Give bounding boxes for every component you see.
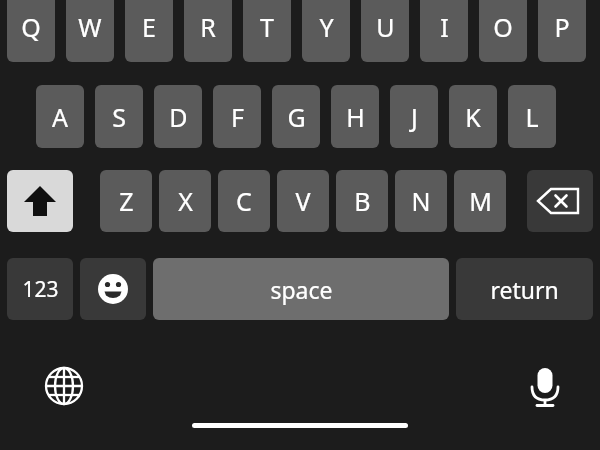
staticText: return: [490, 274, 559, 305]
button[interactable]: Z: [100, 170, 152, 232]
button[interactable]: J: [390, 85, 438, 148]
staticText: Z: [119, 184, 134, 218]
staticText: 123: [22, 275, 59, 304]
staticText: S: [112, 100, 126, 134]
button[interactable]: Emoji: [80, 258, 146, 320]
button[interactable]: U: [361, 0, 409, 62]
staticText: space: [270, 274, 333, 305]
staticText: V: [295, 184, 311, 218]
staticText: K: [465, 100, 481, 134]
button[interactable]: S: [95, 85, 143, 148]
button[interactable]: Dictation: [519, 360, 571, 412]
staticText: W: [78, 10, 102, 44]
staticText: U: [376, 10, 395, 44]
button[interactable]: T: [243, 0, 291, 62]
button[interactable]: B: [336, 170, 388, 232]
staticText: T: [260, 10, 274, 44]
button[interactable]: W: [66, 0, 114, 62]
button[interactable]: Switch keyboard: [38, 360, 90, 412]
staticText: R: [200, 10, 216, 44]
button[interactable]: G: [272, 85, 320, 148]
button[interactable]: M: [454, 170, 506, 232]
staticText: L: [525, 100, 539, 134]
staticText: H: [346, 100, 365, 134]
button[interactable]: R: [184, 0, 232, 62]
staticText: Q: [21, 10, 41, 44]
staticText: X: [178, 184, 193, 218]
button[interactable]: space: [153, 258, 449, 320]
staticText: C: [236, 184, 252, 218]
staticText: J: [411, 100, 418, 134]
button[interactable]: P: [538, 0, 586, 62]
button[interactable]: N: [395, 170, 447, 232]
button[interactable]: H: [331, 85, 379, 148]
button[interactable]: I: [420, 0, 468, 62]
button[interactable]: D: [154, 85, 202, 148]
button[interactable]: A: [36, 85, 84, 148]
staticText: I: [440, 10, 449, 44]
staticText: N: [411, 184, 431, 218]
staticText: A: [52, 100, 68, 134]
button[interactable]: K: [449, 85, 497, 148]
staticText: D: [169, 100, 188, 134]
button[interactable]: L: [508, 85, 556, 148]
staticText: O: [493, 10, 513, 44]
button[interactable]: E: [125, 0, 173, 62]
staticText: E: [142, 10, 156, 44]
button[interactable]: F: [213, 85, 261, 148]
button[interactable]: C: [218, 170, 270, 232]
staticText: F: [231, 100, 244, 134]
staticText: B: [354, 184, 371, 218]
button[interactable]: V: [277, 170, 329, 232]
staticText: G: [287, 100, 306, 134]
button[interactable]: return: [456, 258, 593, 320]
button[interactable]: Q: [7, 0, 55, 62]
button[interactable]: Y: [302, 0, 350, 62]
staticText: M: [469, 184, 492, 218]
staticText: P: [554, 10, 570, 44]
button[interactable]: X: [159, 170, 211, 232]
staticText: Y: [319, 10, 334, 44]
button[interactable]: Backspace: [527, 170, 593, 232]
button[interactable]: 123: [7, 258, 73, 320]
button[interactable]: O: [479, 0, 527, 62]
button[interactable]: Shift: [7, 170, 73, 232]
